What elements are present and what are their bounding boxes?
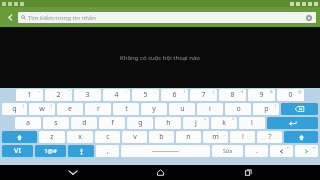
button[interactable]: Shift [2,131,37,143]
staticText: z [50,132,54,142]
staticText: , [170,131,172,136]
staticText: x [78,132,82,142]
staticText: " [68,89,70,94]
button[interactable]: i [197,103,223,115]
button[interactable]: 2 [45,89,72,101]
button[interactable]: 9 [248,89,275,101]
button[interactable]: Backspace [281,103,318,115]
button[interactable]: 0 [277,89,304,101]
button[interactable]: Home [145,165,175,180]
button[interactable]: y [141,103,167,115]
staticText: 2 [56,90,61,100]
button[interactable]: d [71,117,97,129]
button[interactable]: s [43,117,69,129]
button[interactable]: ! [230,131,255,143]
staticText: VI [14,146,21,156]
button[interactable]: k [211,117,237,129]
button[interactable]: o [225,103,251,115]
staticText: a [26,118,30,128]
button[interactable]: 1@# [35,145,66,157]
staticText: | [274,103,277,108]
staticText: ← [287,145,291,150]
staticText: ) [213,89,215,94]
button[interactable]: m [203,131,228,143]
button[interactable]: u [169,103,195,115]
staticText: i [209,104,211,114]
staticText: f [111,118,114,128]
staticText: r [97,104,100,114]
button[interactable]: h [155,117,181,129]
button[interactable]: w [29,103,55,115]
staticText: & [270,89,273,94]
button[interactable]: 6 [161,89,188,101]
button[interactable]: f [99,117,125,129]
staticText: q [12,104,17,114]
button[interactable]: Voice input [68,145,94,157]
button[interactable]: 7 [190,89,217,101]
staticText: 6 [172,90,177,100]
button[interactable]: 4 [103,89,130,101]
button[interactable]: Sửa [212,145,243,157]
button[interactable]: Left [270,145,293,157]
button[interactable]: r [85,103,111,115]
staticText: | [22,103,25,108]
button[interactable]: , [96,145,119,157]
staticText: o [236,104,241,114]
staticText: 8 [230,90,235,100]
button[interactable]: a [15,117,41,129]
button[interactable]: p [253,103,279,115]
button[interactable]: VI [2,145,33,157]
staticText: $ [241,89,244,94]
button[interactable]: Clear [305,14,313,22]
staticText: 5 [143,90,148,100]
button[interactable]: ? [257,131,282,143]
button[interactable]: e [57,103,83,115]
staticText: Không có cuộc hội thoại nào [120,54,200,62]
staticText: 1@# [44,147,57,155]
button[interactable]: 8 [219,89,246,101]
staticText: t [125,104,128,114]
button[interactable]: v [122,131,147,143]
staticText: ~ [38,89,41,94]
button[interactable]: n [176,131,201,143]
button[interactable]: q [2,103,27,115]
staticText: h [166,118,171,128]
button[interactable]: 5 [132,89,159,101]
button[interactable]: g [127,117,153,129]
staticText: Sửa [223,148,232,155]
button[interactable]: Right [295,145,318,157]
button[interactable]: Enter [267,117,318,129]
staticText: v [133,132,137,142]
staticText: 7 [201,90,206,100]
staticText: | [50,103,53,108]
staticText: . [256,146,258,156]
staticText: , [107,146,109,156]
staticText: d [82,118,87,128]
staticText: w [39,104,45,114]
button[interactable]: Hide keyboard [58,165,88,180]
button[interactable]: Tìm kiếm trong tin nhắn [18,12,316,23]
button[interactable]: b [149,131,174,143]
staticText: n [186,132,191,142]
button[interactable]: Space [121,145,210,157]
button[interactable]: j [183,117,209,129]
staticText: y [152,104,156,114]
button[interactable]: t [113,103,139,115]
staticText: k [222,118,226,128]
staticText: p [264,104,269,114]
button[interactable]: x [67,131,93,143]
button[interactable]: . [245,145,268,157]
staticText: u [180,104,185,114]
button[interactable]: 1 [16,89,43,101]
button[interactable]: Recent apps [233,165,263,180]
button[interactable]: Back [4,11,16,23]
button[interactable]: Shift [284,131,318,143]
button[interactable]: 3 [74,89,101,101]
button[interactable]: z [39,131,65,143]
staticText: ' [98,89,99,94]
button[interactable]: l [239,117,265,129]
staticText: : [126,89,128,94]
staticText: ; [155,89,157,94]
button[interactable]: c [95,131,120,143]
staticText: 1 [27,90,32,100]
